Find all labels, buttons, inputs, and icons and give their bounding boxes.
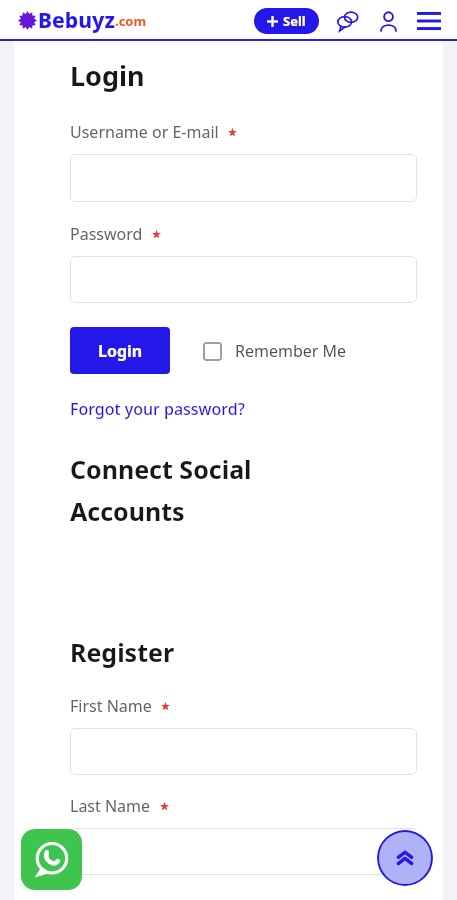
- button[interactable]: Forgot your password?: [70, 398, 245, 420]
- button[interactable]: Messages: [335, 8, 361, 34]
- staticText: Username or E-mail: [70, 121, 219, 143]
- staticText: Remember Me: [235, 340, 347, 362]
- staticText: Password: [70, 223, 143, 245]
- button[interactable]: Remember Me: [203, 340, 347, 362]
- button[interactable]: Text field: [70, 154, 417, 202]
- staticText: Last Name: [70, 795, 151, 817]
- button[interactable]: Scroll to top: [377, 830, 433, 886]
- staticText: Login: [98, 340, 143, 362]
- staticText: Connect Social: [70, 452, 252, 486]
- button[interactable]: Text field: [70, 256, 417, 303]
- button[interactable]: Text field: [70, 828, 417, 875]
- staticText: Register: [70, 635, 175, 669]
- button[interactable]: Login: [70, 327, 170, 374]
- button[interactable]: Bebuyz.com home: [18, 6, 147, 35]
- staticText: Accounts: [70, 494, 185, 528]
- staticText: Bebuyz: [38, 6, 115, 35]
- button[interactable]: Sell: [254, 8, 319, 34]
- button[interactable]: Menu: [415, 7, 443, 35]
- button[interactable]: Account: [375, 8, 401, 34]
- staticText: .com: [115, 12, 147, 30]
- staticText: First Name: [70, 695, 152, 717]
- staticText: Login: [70, 57, 145, 94]
- staticText: Sell: [283, 12, 306, 30]
- staticText: Forgot your password?: [70, 398, 245, 420]
- button[interactable]: Text field: [70, 728, 417, 775]
- button[interactable]: Chat on WhatsApp: [21, 829, 82, 890]
